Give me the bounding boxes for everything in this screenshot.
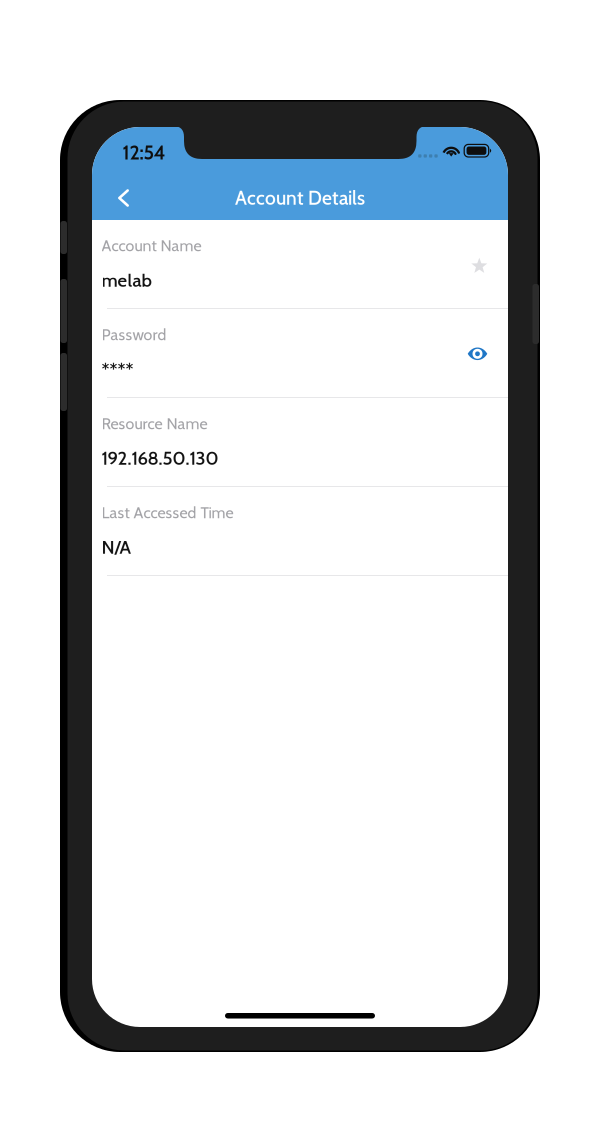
button[interactable]: Last Accessed Time: [92, 487, 508, 576]
staticText: Account Details: [235, 186, 365, 210]
button[interactable]: Back: [101, 169, 145, 220]
button[interactable]: Password: [92, 309, 508, 398]
staticText: 12:54: [122, 141, 165, 164]
staticText: melab: [101, 269, 151, 291]
staticText: ****: [101, 358, 133, 380]
staticText: Resource Name: [101, 414, 207, 433]
staticText: N/A: [101, 536, 130, 558]
staticText: Account Name: [101, 236, 201, 255]
staticText: Last Accessed Time: [101, 503, 233, 522]
staticText: 192.168.50.130: [101, 447, 218, 469]
button[interactable]: Resource Name: [92, 398, 508, 487]
button[interactable]: Account Name: [92, 220, 508, 309]
staticText: Password: [101, 325, 166, 344]
